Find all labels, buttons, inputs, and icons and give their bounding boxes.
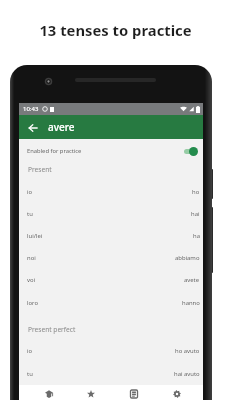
staticText: ho [192, 188, 200, 196]
staticText: lui/lei [27, 232, 43, 240]
staticText: noi [27, 254, 36, 262]
staticText: 13 tenses to practice [39, 20, 192, 40]
button[interactable]: Practice [28, 385, 70, 400]
staticText: Enabled for practice [27, 147, 82, 155]
button[interactable]: Back [23, 118, 42, 137]
button[interactable]: Settings [155, 385, 198, 400]
button[interactable]: Verbs [112, 385, 155, 400]
button[interactable]: tu [19, 363, 203, 385]
button[interactable]: noi [19, 247, 203, 269]
staticText: tu [27, 370, 33, 378]
staticText: Present [28, 165, 52, 174]
staticText: ha [193, 232, 200, 240]
staticText: hanno [182, 299, 200, 307]
button[interactable]: Enabled for practice [19, 139, 203, 163]
button[interactable]: voi [19, 269, 203, 291]
button[interactable]: loro [19, 292, 203, 314]
staticText: Present perfect [28, 325, 76, 334]
staticText: 10:43 [23, 105, 39, 113]
button[interactable]: io [19, 340, 203, 362]
staticText: avete [184, 276, 200, 284]
staticText: io [27, 188, 33, 196]
staticText: loro [27, 299, 38, 307]
button[interactable]: tu [19, 203, 203, 225]
staticText: ho avuto [175, 347, 200, 355]
staticText: hai [191, 210, 200, 218]
staticText: hai avuto [174, 370, 200, 378]
staticText: avere [48, 120, 75, 134]
staticText: io [27, 347, 33, 355]
button[interactable]: lui/lei [19, 225, 203, 247]
staticText: tu [27, 210, 33, 218]
button[interactable]: io [19, 181, 203, 203]
staticText: voi [27, 276, 36, 284]
staticText: abbiamo [175, 254, 200, 262]
button[interactable]: Favorites [70, 385, 112, 400]
